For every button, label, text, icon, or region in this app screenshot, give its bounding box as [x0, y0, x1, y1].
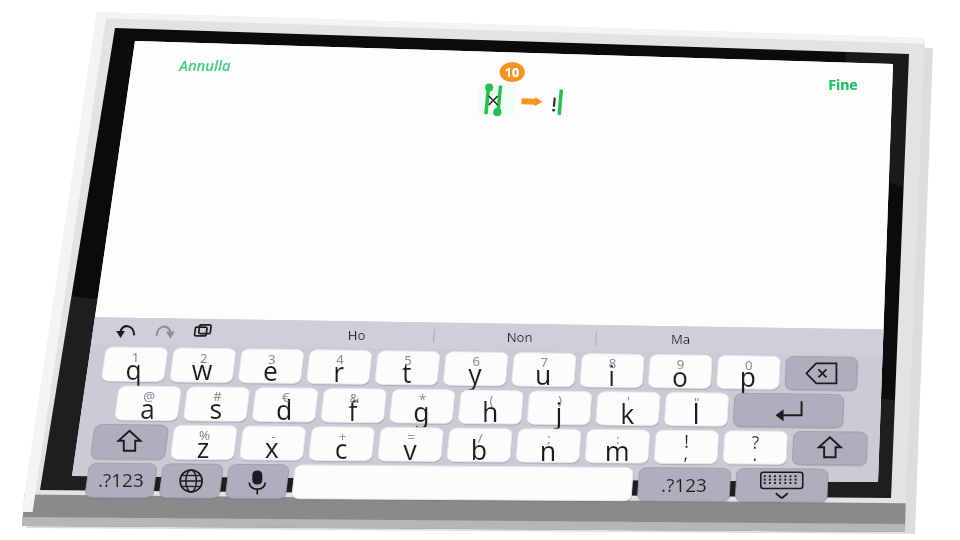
button[interactable]: iPad showing iOS keyboard: [0, 0, 960, 540]
